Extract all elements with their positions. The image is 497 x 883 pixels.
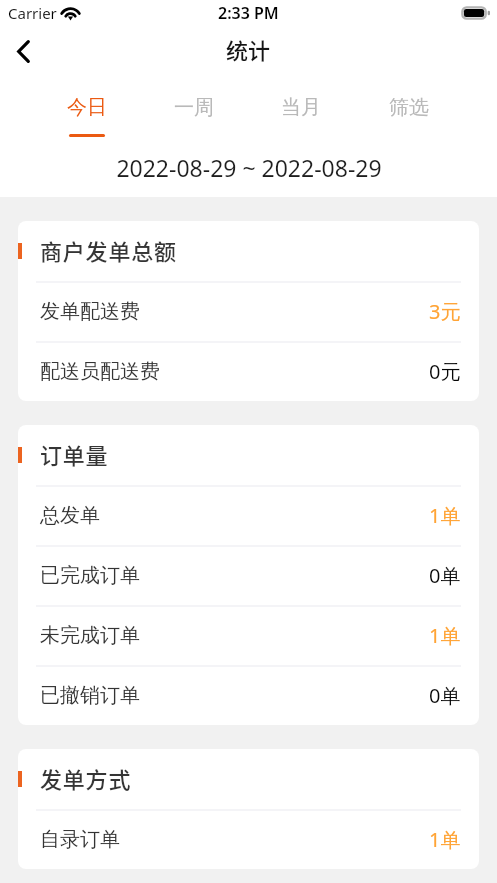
staticText: 筛选 <box>389 95 429 120</box>
staticText: 0单 <box>429 562 461 589</box>
staticText: 0单 <box>429 682 461 709</box>
staticText: 自录订单 <box>40 827 120 852</box>
button[interactable]: 总发单 <box>18 485 479 545</box>
staticText: 1单 <box>429 502 461 529</box>
button[interactable]: 筛选 <box>355 76 463 137</box>
staticText: 1单 <box>429 622 461 649</box>
button[interactable]: 配送员配送费 <box>18 341 479 401</box>
button[interactable]: 今日 <box>33 76 140 137</box>
staticText: 2:33 PM <box>218 2 279 24</box>
button[interactable]: 未完成订单 <box>18 605 479 665</box>
staticText: 总发单 <box>40 503 100 528</box>
staticText: 2022-08-29 ~ 2022-08-29 <box>116 152 382 183</box>
button[interactable]: 一周 <box>140 76 247 137</box>
staticText: 1单 <box>429 826 461 853</box>
staticText: 发单方式 <box>40 762 132 794</box>
button[interactable]: 发单配送费 <box>18 281 479 341</box>
button[interactable]: 已撤销订单 <box>18 665 479 725</box>
button[interactable]: 已完成订单 <box>18 545 479 605</box>
staticText: 发单配送费 <box>40 299 140 324</box>
staticText: 0元 <box>429 358 461 385</box>
staticText: 统计 <box>226 33 271 65</box>
staticText: 配送员配送费 <box>40 359 160 384</box>
staticText: 未完成订单 <box>40 623 140 648</box>
button[interactable]: Back <box>0 28 46 74</box>
button[interactable]: 自录订单 <box>18 809 479 869</box>
staticText: 商户发单总额 <box>40 234 177 266</box>
button[interactable]: 当月 <box>247 76 355 137</box>
staticText: 已撤销订单 <box>40 683 140 708</box>
staticText: 订单量 <box>40 438 109 470</box>
staticText: 今日 <box>67 95 107 120</box>
staticText: 当月 <box>281 95 321 120</box>
staticText: 已完成订单 <box>40 563 140 588</box>
staticText: 一周 <box>174 95 214 120</box>
staticText: Carrier <box>8 3 57 23</box>
staticText: 3元 <box>429 298 461 325</box>
